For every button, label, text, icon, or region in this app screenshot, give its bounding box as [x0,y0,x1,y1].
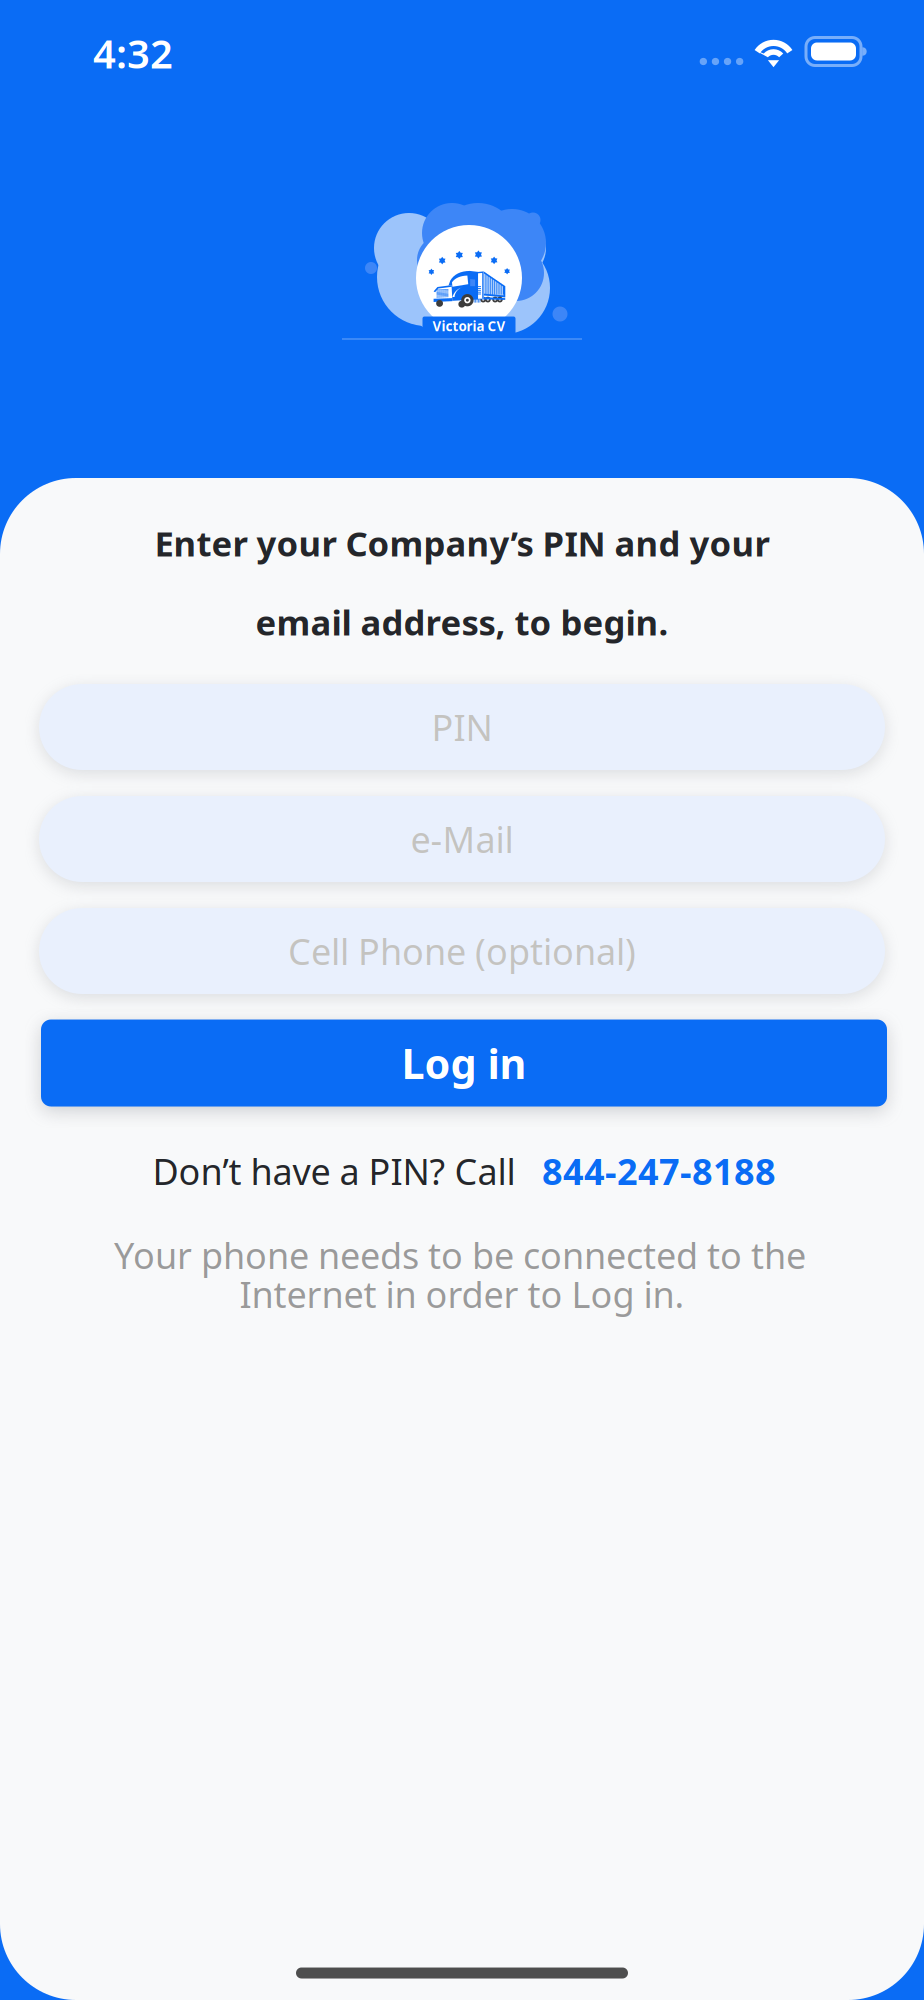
button[interactable]: 844-247-8188 [542,1147,776,1195]
button[interactable]: PIN [39,684,885,770]
staticText: 844-247-8188 [542,1147,776,1195]
staticText: Your phone needs to be connected to the [114,1231,806,1279]
button[interactable]: e-Mail [39,796,885,882]
staticText: email address, to begin. [255,599,668,645]
staticText: Internet in order to Log in. [239,1270,684,1318]
staticText: Log in [401,1036,526,1090]
staticText: 4:32 [93,26,173,79]
staticText: Don’t have a PIN? Call [152,1147,515,1195]
staticText: Victoria CV [432,317,505,335]
staticText: e-Mail [410,815,513,863]
staticText: PIN [431,703,492,751]
staticText: Cell Phone (optional) [288,927,636,975]
staticText: Enter your Company’s PIN and your [154,520,769,566]
button[interactable]: Log in [41,1019,887,1106]
button[interactable]: Cell Phone (optional) [39,908,885,994]
